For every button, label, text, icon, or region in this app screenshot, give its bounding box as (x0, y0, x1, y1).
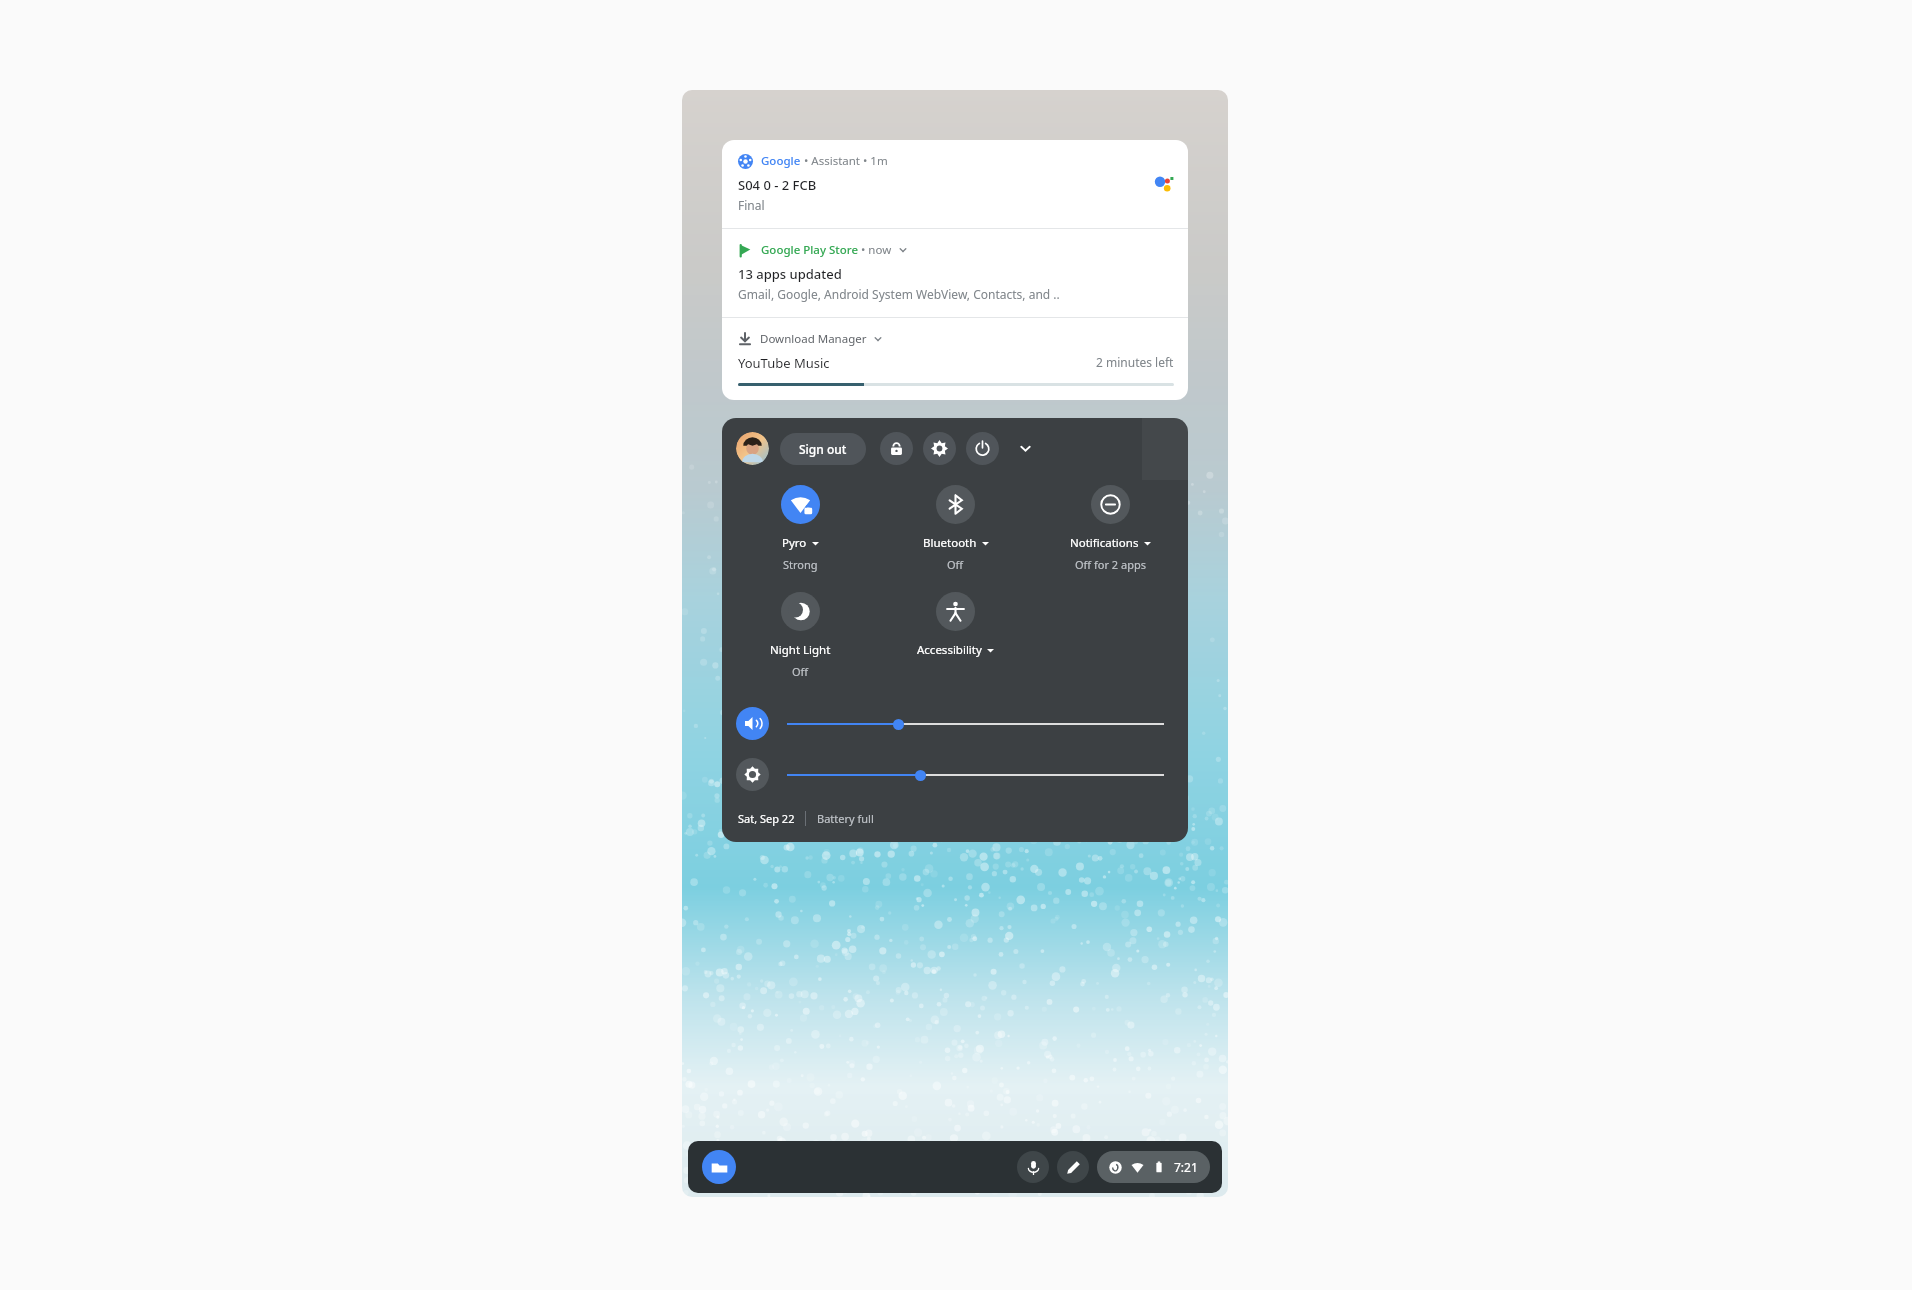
button[interactable]: Google (722, 140, 1188, 228)
button[interactable]: Sign out (780, 433, 866, 465)
staticText: Sat, Sep 22 (738, 811, 795, 826)
staticText: • Assistant • 1m (801, 153, 888, 169)
staticText: Night Light (770, 642, 831, 658)
button[interactable]: Stylus tools (1057, 1151, 1089, 1183)
staticText: Off for 2 apps (1075, 557, 1146, 572)
staticText: Final (738, 197, 765, 213)
staticText: Sign out (799, 441, 847, 457)
staticText: Download Manager (760, 331, 867, 347)
staticText: 13 apps updated (738, 265, 842, 283)
staticText: 7:21 (1174, 1159, 1198, 1175)
button[interactable]: Bluetooth (878, 483, 1033, 574)
button[interactable]: Download Manager (722, 318, 1188, 400)
button[interactable]: Settings (923, 432, 956, 465)
button[interactable]: Lock (880, 432, 913, 465)
staticText: Pyro (782, 535, 807, 551)
other: Brightness (736, 758, 769, 791)
button[interactable]: 7:21 (1097, 1151, 1210, 1183)
button[interactable]: Voice search (1017, 1151, 1049, 1183)
staticText: Google (761, 153, 801, 169)
button[interactable]: Volume (736, 707, 1164, 740)
button[interactable]: Files (702, 1150, 736, 1184)
staticText: 2 minutes left (1096, 354, 1174, 370)
staticText: Battery full (817, 811, 874, 826)
button[interactable]: Accessibility (878, 590, 1033, 660)
staticText: Accessibility (917, 642, 982, 658)
button[interactable]: Collapse (1009, 432, 1042, 465)
button[interactable]: Night Light (722, 590, 878, 681)
button[interactable]: Brightness (736, 758, 1164, 791)
staticText: Bluetooth (923, 535, 977, 551)
button[interactable]: Account (736, 432, 769, 465)
other: Volume (736, 707, 769, 740)
button[interactable]: Notifications (1033, 483, 1188, 574)
button[interactable]: Pyro (722, 483, 878, 574)
staticText: Google Play Store (761, 242, 858, 258)
staticText: S04 0 - 2 FCB (738, 176, 817, 194)
staticText: Off (947, 557, 964, 572)
button[interactable]: Google Play Store (722, 229, 1188, 317)
staticText: • now (858, 242, 892, 258)
staticText: YouTube Music (738, 354, 830, 372)
button[interactable]: Power (966, 432, 999, 465)
staticText: Off (792, 664, 809, 679)
staticText: Notifications (1070, 535, 1139, 551)
staticText: Gmail, Google, Android System WebView, C… (738, 286, 1060, 302)
staticText: Strong (783, 557, 818, 572)
